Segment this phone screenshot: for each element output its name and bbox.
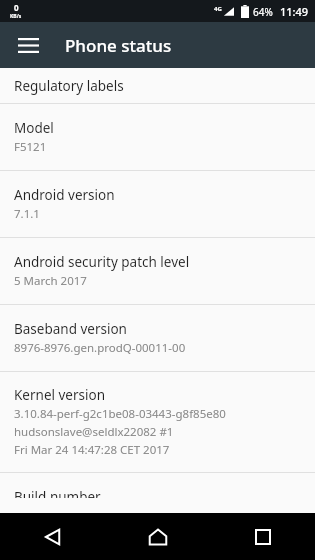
staticText: 8976-8976.gen.prodQ-00011-00 [14, 340, 186, 356]
staticText: 5 March 2017 [14, 273, 87, 289]
staticText: Android version [14, 186, 115, 204]
button[interactable]: Android security patch level [0, 238, 315, 304]
staticText: 11:49 [280, 4, 309, 19]
button[interactable]: Open navigation menu [6, 23, 50, 67]
staticText: Phone status [65, 34, 172, 57]
staticText: 7.1.1 [14, 206, 40, 222]
staticText: Kernel version [14, 386, 106, 404]
staticText: 64% [253, 5, 273, 19]
staticText: 0 [14, 2, 19, 13]
button[interactable]: Home [105, 513, 210, 560]
button[interactable]: Kernel version [0, 372, 315, 472]
staticText: F5121 [14, 139, 47, 155]
staticText: Build number [14, 488, 101, 498]
staticText: Regulatory labels [14, 77, 124, 95]
button[interactable]: Build number [0, 473, 315, 513]
button[interactable]: Back [0, 513, 105, 560]
staticText: 4G [214, 5, 222, 13]
staticText: hudsonslave@seldlx22082 #1 [14, 424, 174, 440]
button[interactable]: Regulatory labels [0, 68, 315, 103]
staticText: 3.10.84-perf-g2c1be08-03443-g8f85e80 [14, 406, 226, 422]
staticText: Fri Mar 24 14:47:28 CET 2017 [14, 442, 170, 458]
staticText: Model [14, 119, 54, 137]
button[interactable]: Recent apps [210, 513, 315, 560]
button[interactable]: Baseband version [0, 305, 315, 371]
staticText: Baseband version [14, 320, 127, 338]
staticText: KB/s [10, 13, 22, 20]
staticText: Android security patch level [14, 253, 190, 271]
button[interactable]: Model [0, 104, 315, 170]
button[interactable]: Android version [0, 171, 315, 237]
